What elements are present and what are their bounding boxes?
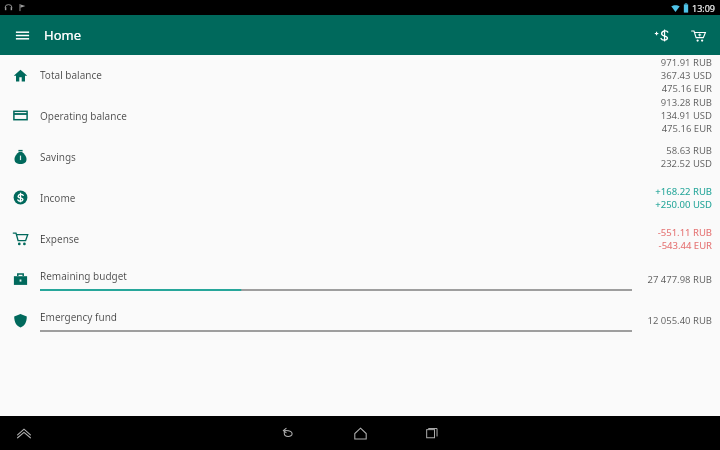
staticText: +250.00 USD <box>655 198 712 211</box>
staticText: Total balance <box>40 68 660 82</box>
other: Emergency fund <box>13 313 28 328</box>
staticText: Emergency fund <box>40 310 117 324</box>
button[interactable]: Savings <box>0 136 720 177</box>
staticText: +168.22 RUB <box>655 185 712 198</box>
button[interactable]: Add income <box>644 15 680 55</box>
button[interactable]: Add expense <box>680 15 716 55</box>
staticText: -551.11 RUB <box>657 226 712 239</box>
button[interactable]: Open navigation drawer <box>0 15 44 55</box>
button[interactable]: Operating balance <box>0 95 720 136</box>
staticText: -543.44 EUR <box>658 239 712 252</box>
staticText: Expense <box>40 232 657 246</box>
button[interactable]: Income <box>0 177 720 218</box>
other: Income <box>13 190 28 205</box>
staticText: 367.43 USD <box>660 69 712 82</box>
staticText: 134.91 USD <box>660 109 712 122</box>
staticText: 27 477.98 RUB <box>647 273 712 286</box>
staticText: 232.52 USD <box>660 157 712 170</box>
staticText: 13:09 <box>692 2 716 14</box>
button[interactable]: Total balance <box>0 55 720 95</box>
button[interactable]: Home <box>324 416 396 450</box>
staticText: 58.63 RUB <box>666 144 712 157</box>
other: Operating balance <box>13 108 28 123</box>
staticText: Operating balance <box>40 109 660 123</box>
other: Expense <box>13 231 28 246</box>
button[interactable]: Recent apps <box>396 416 468 450</box>
button[interactable]: Emergency fund <box>0 300 720 341</box>
staticText: Remaining budget <box>40 269 127 283</box>
staticText: Income <box>40 191 655 205</box>
button[interactable]: Remaining budget <box>0 259 720 300</box>
button[interactable]: Expense <box>0 218 720 259</box>
staticText: 475.16 EUR <box>661 122 712 135</box>
staticText: Home <box>44 26 81 44</box>
other: Remaining budget <box>13 272 28 287</box>
staticText: 971.91 RUB <box>660 56 712 69</box>
other: Savings <box>13 149 28 164</box>
staticText: 913.28 RUB <box>660 96 712 109</box>
staticText: 475.16 EUR <box>661 82 712 95</box>
staticText: Savings <box>40 150 660 164</box>
button[interactable]: Back <box>252 416 324 450</box>
button[interactable]: Expand <box>12 421 36 445</box>
other: Total balance <box>13 68 28 83</box>
staticText: 12 055.40 RUB <box>647 314 712 327</box>
